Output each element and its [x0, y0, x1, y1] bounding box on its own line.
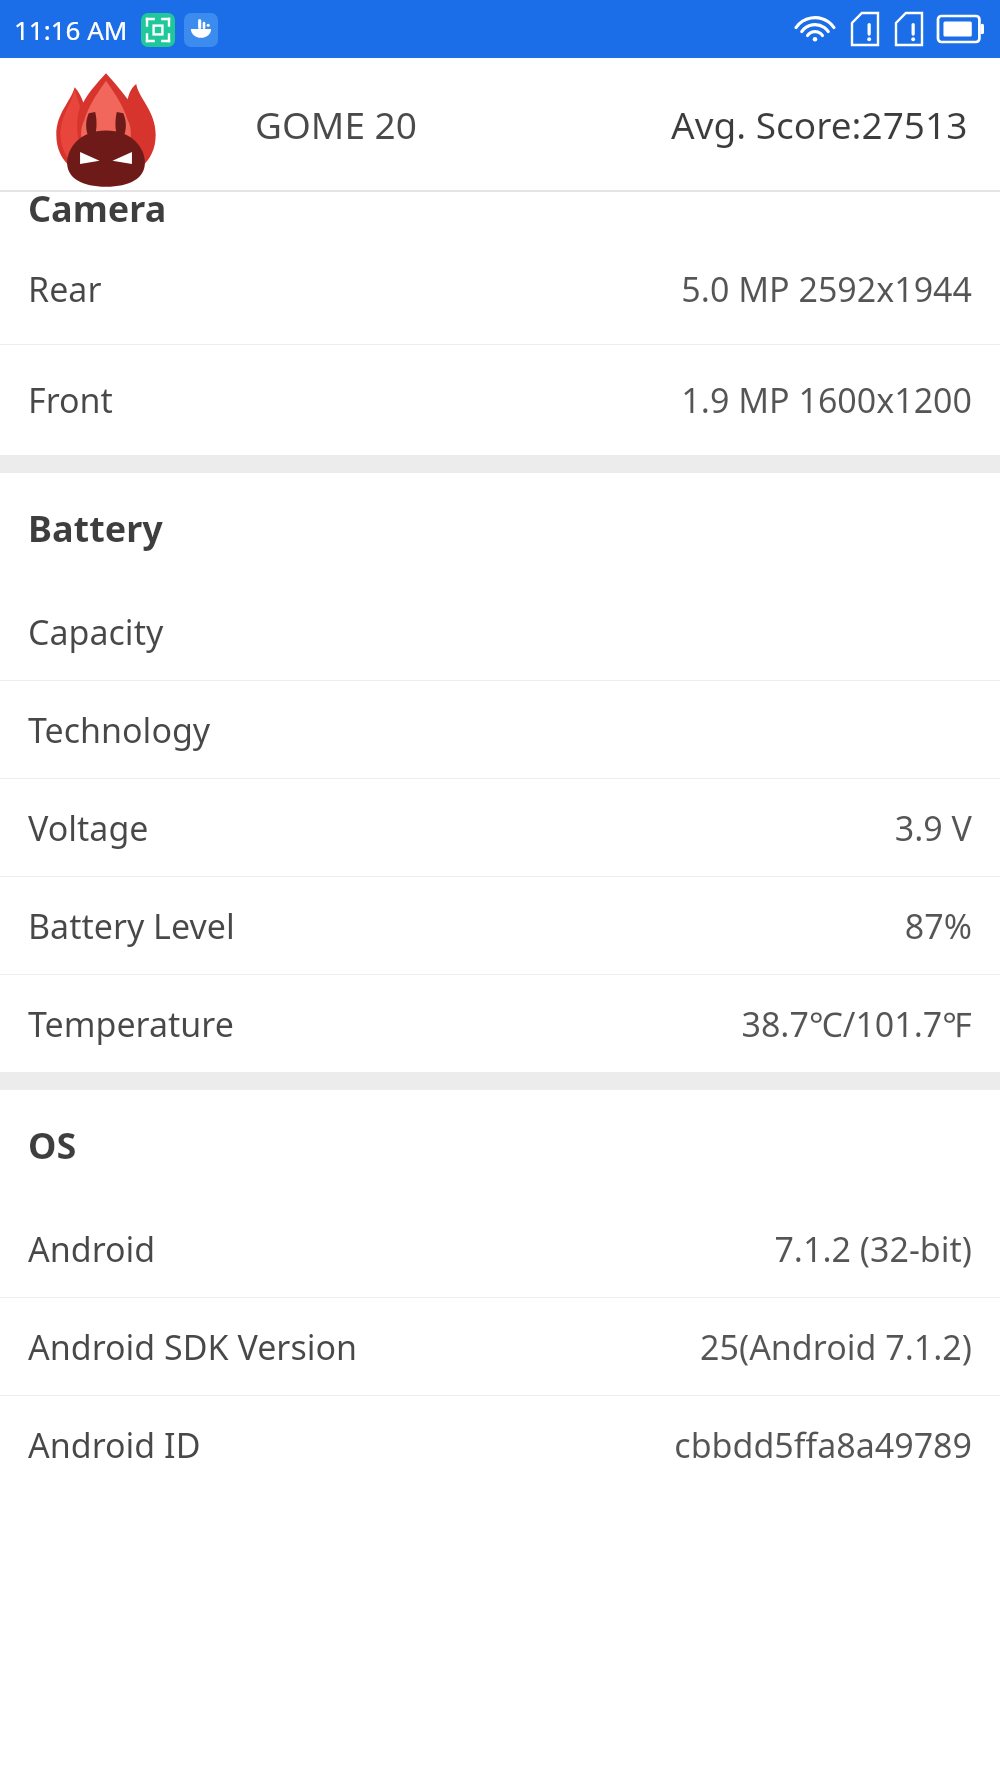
staticText: Technology [28, 707, 972, 753]
staticText: Temperature [28, 1001, 741, 1047]
button[interactable]: AnTuTu [52, 70, 160, 178]
staticText: Avg. Score:27513 [671, 99, 968, 149]
other: Scanner [141, 13, 175, 47]
staticText: Front [28, 377, 681, 423]
staticText: 87% [904, 903, 972, 949]
staticText: 38.7℃/101.7℉ [741, 1001, 972, 1047]
staticText: Android [28, 1226, 774, 1272]
staticText: Android ID [28, 1422, 674, 1468]
staticText: Battery [28, 504, 163, 553]
staticText: 3.9 V [894, 805, 972, 851]
button[interactable]: Android [0, 1200, 1000, 1297]
staticText: Battery Level [28, 903, 904, 949]
staticText: 1.9 MP 1600x1200 [681, 377, 972, 423]
button[interactable]: Rear [0, 234, 1000, 344]
staticText: OS [28, 1121, 77, 1170]
staticText: Capacity [28, 609, 972, 655]
staticText: Android SDK Version [28, 1324, 700, 1370]
button[interactable]: Temperature [0, 975, 1000, 1072]
button[interactable]: Android ID [0, 1396, 1000, 1493]
button[interactable]: Battery Level [0, 877, 1000, 974]
staticText: 7.1.2 (32-bit) [774, 1226, 972, 1272]
button[interactable]: Voltage [0, 779, 1000, 876]
staticText: 25(Android 7.1.2) [700, 1324, 972, 1370]
button[interactable]: Technology [0, 681, 1000, 778]
staticText: cbbdd5ffa8a49789 [674, 1422, 972, 1468]
staticText: Voltage [28, 805, 894, 851]
button[interactable]: Capacity [0, 583, 1000, 680]
button[interactable]: Front [0, 345, 1000, 455]
staticText: Rear [28, 266, 681, 312]
button[interactable]: Android SDK Version [0, 1298, 1000, 1395]
other: Input method [184, 13, 218, 47]
staticText: GOME 20 [255, 99, 417, 149]
staticText: 5.0 MP 2592x1944 [681, 266, 972, 312]
staticText: 11:16 AM [14, 12, 128, 47]
staticText: Camera [28, 184, 167, 226]
